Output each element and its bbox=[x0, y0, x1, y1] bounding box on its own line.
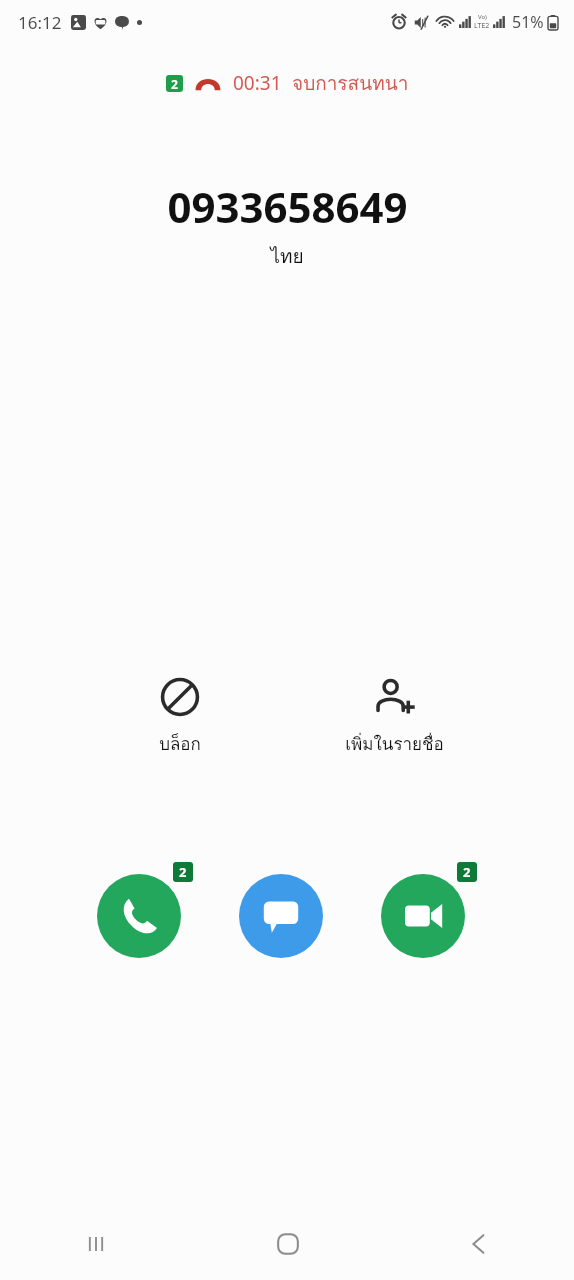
staticText: ไทย bbox=[270, 241, 304, 271]
staticText: 2 bbox=[171, 76, 178, 92]
button[interactable]: Recents bbox=[0, 1208, 192, 1280]
staticText: บล็อก bbox=[159, 730, 201, 757]
staticText: 16:12 bbox=[18, 11, 62, 34]
staticText: 2 bbox=[463, 863, 471, 881]
staticText: 0933658649 bbox=[167, 178, 408, 235]
staticText: จบการสนทนา bbox=[292, 68, 409, 98]
button[interactable]: Home bbox=[192, 1208, 383, 1280]
staticText: LTE2 bbox=[474, 21, 490, 31]
button[interactable]: เพิ่มในรายชื่อ bbox=[319, 672, 469, 761]
button[interactable]: บล็อก bbox=[105, 672, 255, 761]
button[interactable]: Message bbox=[239, 862, 335, 958]
staticText: 51% bbox=[512, 11, 544, 33]
button[interactable]: Back bbox=[383, 1208, 574, 1280]
staticText: 00:31 bbox=[233, 70, 282, 96]
staticText: Vo) bbox=[478, 13, 487, 21]
button[interactable]: Call bbox=[97, 862, 193, 958]
button[interactable]: Video call bbox=[381, 862, 477, 958]
staticText: เพิ่มในรายชื่อ bbox=[345, 730, 444, 757]
staticText: 2 bbox=[179, 863, 187, 881]
